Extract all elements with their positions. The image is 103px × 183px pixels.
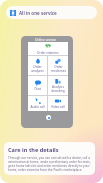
staticText: Online service xyxy=(35,38,57,42)
button[interactable]: Analysis decoding xyxy=(48,76,68,95)
staticText: Care in the details xyxy=(8,146,59,154)
staticText: All in one service xyxy=(19,10,57,16)
staticText: Order medicines xyxy=(51,65,66,73)
button[interactable]: Home xyxy=(46,115,51,120)
button[interactable]: Order medicines xyxy=(48,56,68,75)
button[interactable]: All in one service xyxy=(6,6,97,19)
button[interactable]: Order analyzes xyxy=(28,56,47,75)
staticText: Analysis decoding xyxy=(51,85,65,93)
staticText: Order analyzes xyxy=(31,65,44,73)
staticText: Chat xyxy=(34,87,41,91)
button[interactable]: Video call xyxy=(48,96,68,111)
staticText: Order vitamins xyxy=(37,51,59,55)
button[interactable]: Audio call xyxy=(28,96,47,111)
staticText: Audio call xyxy=(30,105,45,109)
button[interactable]: Order vitamins xyxy=(28,42,68,55)
button[interactable]: Chat xyxy=(28,76,47,95)
staticText: Through our service, you can consult wit… xyxy=(8,156,91,172)
staticText: Video call xyxy=(51,105,65,109)
